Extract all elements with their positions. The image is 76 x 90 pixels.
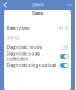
staticText: Settings — [6, 36, 19, 40]
staticText: Diagnostics data collection — [6, 51, 39, 62]
button[interactable]: Diagnostics data collection — [4, 52, 71, 61]
staticText: 41 % — [59, 26, 69, 31]
staticText: Status — [32, 11, 43, 16]
staticText: Diagnostics logs upload — [6, 63, 56, 68]
button[interactable]: More options — [66, 0, 73, 10]
staticText: Device — [31, 2, 43, 8]
button[interactable]: Battery level — [4, 24, 71, 33]
button[interactable]: Back — [2, 0, 9, 10]
button[interactable]: Diagnostics logs upload — [4, 61, 71, 70]
button[interactable]: Diagnostic mode — [4, 43, 71, 52]
staticText: Battery level — [6, 26, 30, 31]
staticText: Diagnostic mode — [6, 45, 42, 50]
